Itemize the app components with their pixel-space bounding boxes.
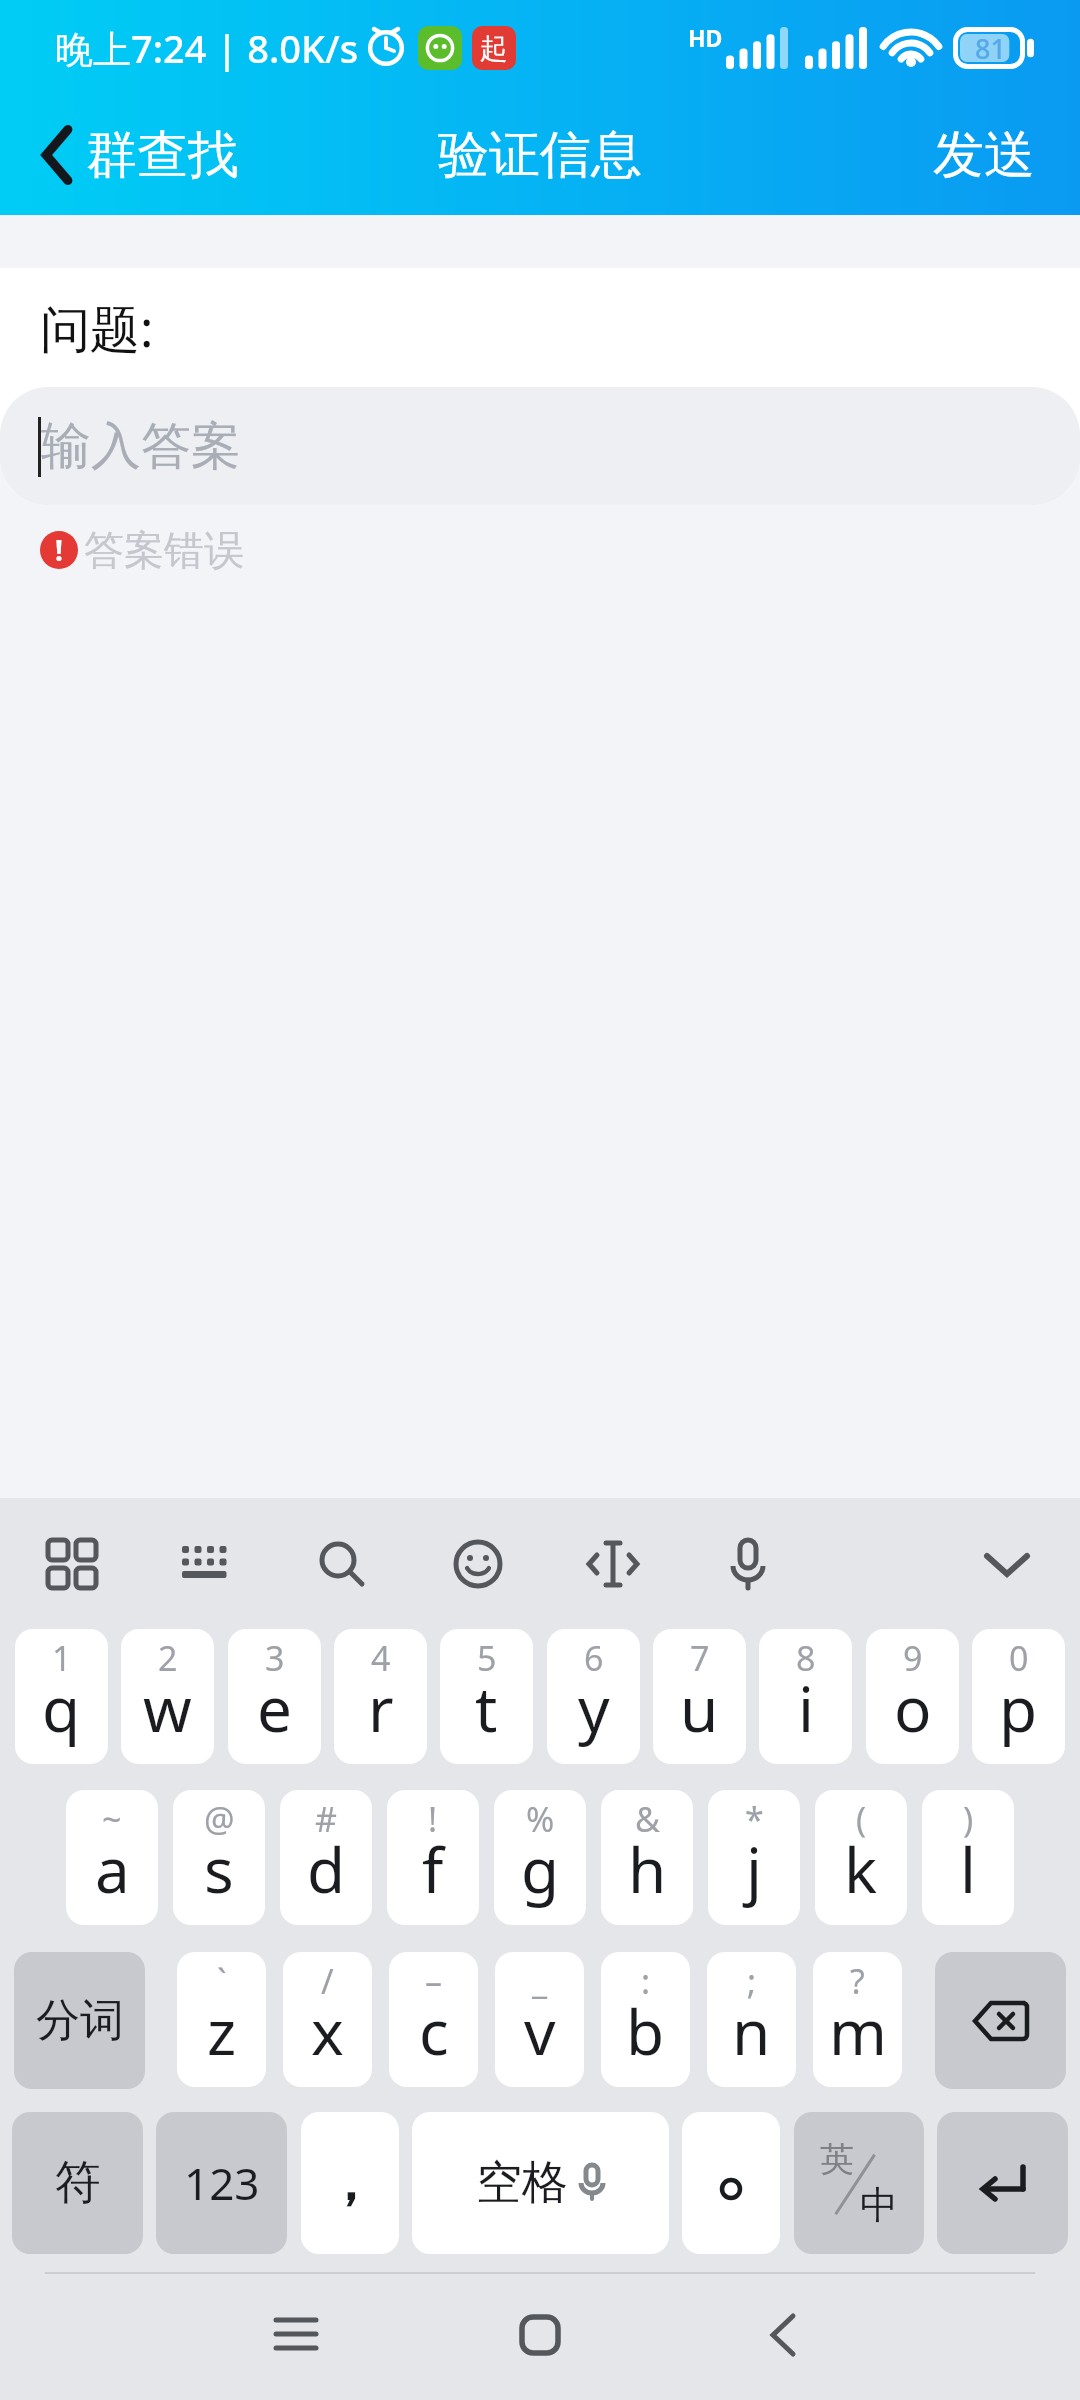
staticText: HD (688, 22, 723, 53)
staticText: 4 (371, 1635, 391, 1681)
button[interactable]: ; (707, 1952, 796, 2087)
staticText: 验证信息 (438, 123, 642, 187)
button[interactable] (276, 2317, 316, 2353)
staticText: ! (428, 1796, 438, 1842)
staticText: 1 (52, 1635, 72, 1681)
staticText: % (526, 1796, 555, 1842)
button[interactable]: 发送 (933, 123, 1035, 187)
staticText: c (419, 1989, 449, 2073)
staticText: 81 (975, 30, 1006, 67)
button[interactable]: : (601, 1952, 690, 2087)
button[interactable]: ` (177, 1952, 266, 2087)
staticText: 输入答案 (41, 415, 241, 478)
staticText: e (257, 1666, 292, 1750)
staticText: t (475, 1666, 498, 1750)
staticText: : (641, 1958, 651, 2004)
staticText: q (42, 1666, 81, 1750)
button[interactable]: 9 (866, 1629, 959, 1764)
staticText: j (746, 1827, 762, 1911)
staticText: r (368, 1666, 394, 1750)
button[interactable]: ? (813, 1952, 902, 2087)
staticText: ` (217, 1958, 227, 2004)
button[interactable]: * (708, 1790, 800, 1925)
button[interactable]: ! (387, 1790, 479, 1925)
button[interactable]: ) (922, 1790, 1014, 1925)
staticText: 9 (903, 1635, 923, 1681)
button[interactable]: / (283, 1952, 372, 2087)
button[interactable]: # (280, 1790, 372, 1925)
button[interactable]: 0 (972, 1629, 1065, 1764)
button[interactable] (181, 1538, 233, 1590)
staticText: 5 (477, 1635, 497, 1681)
staticText: 7 (690, 1635, 710, 1681)
staticText: g (521, 1827, 560, 1911)
button[interactable]: 符 (12, 2112, 143, 2254)
staticText: m (829, 1989, 887, 2073)
staticText: 0 (1009, 1635, 1029, 1681)
staticText: 3 (265, 1635, 285, 1681)
staticText: s (204, 1827, 234, 1911)
button[interactable]: 3 (228, 1629, 321, 1764)
staticText: p (999, 1666, 1038, 1750)
staticText: ~ (102, 1796, 122, 1842)
button[interactable]: 4 (334, 1629, 427, 1764)
button[interactable]: @ (173, 1790, 265, 1925)
staticText: ) (963, 1796, 974, 1842)
staticText: 8 (796, 1635, 816, 1681)
staticText: 符 (55, 2154, 101, 2212)
staticText: o (894, 1666, 932, 1750)
staticText: d (307, 1827, 346, 1911)
staticText: ( (856, 1796, 867, 1842)
button[interactable]: ， (301, 2112, 399, 2254)
staticText: x (311, 1989, 344, 2073)
button[interactable]: 空格 (412, 2112, 669, 2254)
button[interactable]: 5 (440, 1629, 533, 1764)
button[interactable] (979, 1538, 1035, 1590)
button[interactable] (722, 1538, 774, 1590)
button[interactable]: 输入答案 (0, 387, 1080, 505)
button[interactable]: 7 (653, 1629, 746, 1764)
button[interactable]: 6 (547, 1629, 640, 1764)
button[interactable]: ~ (66, 1790, 158, 1925)
button[interactable]: % (494, 1790, 586, 1925)
staticText: b (626, 1989, 665, 2073)
button[interactable] (935, 1952, 1066, 2089)
staticText: 6 (584, 1635, 604, 1681)
button[interactable]: 2 (121, 1629, 214, 1764)
staticText: * (745, 1796, 764, 1842)
staticText: 发送 (933, 123, 1035, 187)
button[interactable]: 8 (759, 1629, 852, 1764)
button[interactable]: _ (495, 1952, 584, 2087)
button[interactable]: 1 (15, 1629, 108, 1764)
button[interactable] (587, 1538, 639, 1590)
button[interactable]: 群查找 (40, 123, 239, 187)
button[interactable] (46, 1538, 98, 1590)
staticText: ! (55, 531, 63, 569)
button[interactable] (771, 2314, 795, 2356)
staticText: – (425, 1958, 442, 2004)
staticText: ; (747, 1958, 757, 2004)
staticText: 123 (184, 2153, 260, 2213)
button[interactable]: 123 (156, 2112, 287, 2254)
staticText: @ (204, 1796, 235, 1842)
button[interactable]: – (389, 1952, 478, 2087)
staticText: ? (850, 1958, 865, 2004)
button[interactable]: ( (815, 1790, 907, 1925)
staticText: k (844, 1827, 878, 1911)
staticText: h (628, 1827, 667, 1911)
button[interactable]: 英 (794, 2112, 924, 2254)
staticText: u (680, 1666, 719, 1750)
staticText: 问题: (40, 294, 154, 362)
button[interactable] (682, 2112, 780, 2254)
staticText: z (207, 1989, 237, 2073)
staticText: 空格 (476, 2154, 568, 2212)
button[interactable]: 分词 (14, 1952, 145, 2089)
staticText: 起 (480, 31, 508, 66)
button[interactable]: & (601, 1790, 693, 1925)
button[interactable] (316, 1538, 368, 1590)
button[interactable] (520, 2315, 560, 2355)
staticText: ， (325, 2152, 375, 2215)
button[interactable] (937, 2112, 1068, 2254)
button[interactable] (452, 1538, 504, 1590)
staticText: 中 (860, 2181, 898, 2229)
